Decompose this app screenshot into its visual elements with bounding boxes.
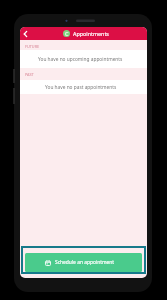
button[interactable]: You have no past appointments (20, 80, 147, 94)
button[interactable]: Back (20, 27, 31, 40)
staticText: PAST (25, 72, 34, 77)
staticText: You have no upcoming appointments (38, 56, 123, 63)
button[interactable]: You have no upcoming appointments (20, 50, 147, 68)
staticText: FUTURE (25, 44, 40, 49)
staticText: Appointments (73, 30, 109, 37)
staticText: You have no past appointments (45, 84, 117, 91)
staticText: C (65, 30, 69, 37)
staticText: Schedule an appointment (55, 259, 115, 266)
button[interactable]: Schedule an appointment (25, 253, 142, 272)
